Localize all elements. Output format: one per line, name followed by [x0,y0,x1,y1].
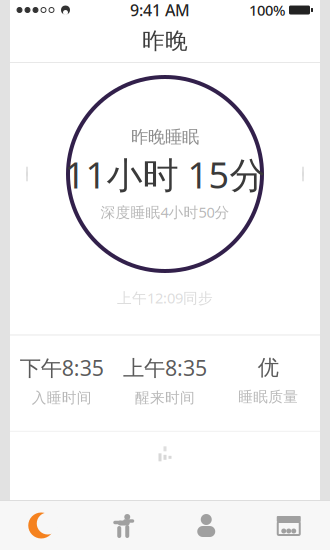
button[interactable]: Sleep details chart [143,439,187,469]
staticText: 睡眠质量 [238,388,298,406]
staticText: 上午12:09同步 [117,288,213,307]
staticText: 下午8:35 [20,353,104,382]
staticText: 醒来时间 [135,389,195,407]
staticText: 9:41 AM [130,0,190,21]
staticText: 上午8:35 [123,353,207,382]
staticText: 优 [258,354,279,381]
staticText: 100% [249,0,285,20]
staticText: 11小时 15分 [64,150,265,198]
staticText: 入睡时间 [32,389,92,407]
button[interactable]: Store [247,501,330,550]
button[interactable]: Next night [284,144,318,204]
button[interactable]: Sleep [0,501,82,550]
staticText: 深度睡眠4小时50分 [100,202,229,222]
button[interactable]: Profile [165,501,247,550]
staticText: 昨晚睡眠 [131,126,199,147]
button[interactable]: Previous night [12,144,46,204]
button[interactable]: Last night sleep 11 hours 15 minutes [64,77,265,271]
staticText: 昨晚 [142,27,188,55]
button[interactable]: Activity [82,501,165,550]
